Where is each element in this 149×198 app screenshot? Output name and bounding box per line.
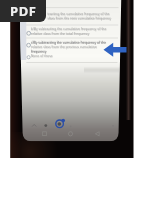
button[interactable]: PDF bbox=[0, 0, 46, 22]
staticText: PDF bbox=[10, 2, 37, 20]
